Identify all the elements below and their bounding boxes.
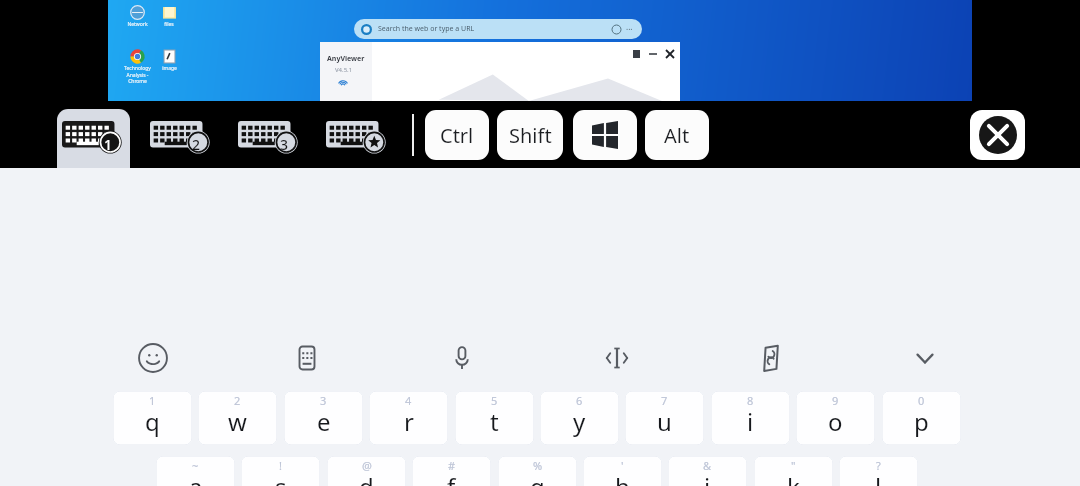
button[interactable]: Ctrl	[425, 110, 489, 160]
button[interactable]: ?	[839, 456, 918, 486]
button[interactable]: Alt	[645, 110, 709, 160]
staticText: "	[791, 458, 796, 473]
staticText: Technology Analysis - Chrome	[124, 65, 151, 84]
staticText: a	[189, 470, 203, 486]
staticText: ?	[876, 458, 881, 473]
staticText: Shift	[509, 122, 552, 149]
staticText: s	[275, 470, 287, 486]
staticText: V4.5.1	[335, 66, 353, 74]
button[interactable]: Keyboard layout 1	[62, 116, 126, 154]
staticText: 8	[747, 393, 754, 408]
button[interactable]: Close toolbar	[970, 110, 1025, 160]
staticText: e	[317, 405, 331, 438]
button[interactable]: &	[668, 456, 747, 486]
staticText: o	[828, 405, 843, 438]
button[interactable]: !	[241, 456, 320, 486]
staticText: 4	[405, 393, 412, 408]
button[interactable]: 6	[540, 391, 619, 445]
button[interactable]: ~	[156, 456, 235, 486]
staticText: 3	[280, 135, 289, 154]
staticText: Search the web or type a URL	[378, 24, 475, 34]
button[interactable]: 5	[455, 391, 534, 445]
button[interactable]: @	[327, 456, 406, 486]
button[interactable]: 8	[711, 391, 790, 445]
button[interactable]: Emoji	[126, 333, 180, 383]
button[interactable]: Keyboard layout 2	[150, 116, 214, 154]
staticText: image	[162, 65, 177, 72]
staticText: d	[359, 470, 374, 486]
staticText: &	[703, 458, 712, 473]
staticText: k	[787, 470, 800, 486]
button[interactable]: 1	[113, 391, 192, 445]
staticText: 2	[234, 393, 241, 408]
staticText: 5	[491, 393, 498, 408]
staticText: 1	[104, 135, 113, 154]
staticText: ...	[626, 21, 633, 32]
button[interactable]: 9	[796, 391, 875, 445]
button[interactable]: Clipboard	[280, 333, 334, 383]
button[interactable]: "	[754, 456, 833, 486]
staticText: ~	[192, 458, 199, 473]
staticText: t	[490, 405, 499, 438]
button[interactable]: Shift	[497, 110, 563, 160]
staticText: Network	[127, 21, 148, 28]
staticText: 9	[832, 393, 839, 408]
staticText: j	[704, 470, 711, 486]
button[interactable]: 0	[882, 391, 961, 445]
staticText: files	[164, 21, 174, 28]
staticText: 0	[918, 393, 925, 408]
staticText: r	[404, 405, 414, 438]
staticText: %	[533, 458, 543, 473]
staticText: p	[914, 405, 929, 438]
button[interactable]: Keyboard layout 3	[238, 116, 302, 154]
staticText: 7	[661, 393, 668, 408]
staticText: 1	[149, 393, 156, 408]
button[interactable]: Keyboard layout 0	[326, 116, 390, 154]
staticText: AnyViewer	[327, 54, 365, 64]
staticText: Ctrl	[440, 122, 474, 149]
button[interactable]: #	[412, 456, 491, 486]
staticText: g	[530, 470, 545, 486]
button[interactable]: Voice input	[435, 333, 489, 383]
staticText: #	[448, 458, 456, 473]
button[interactable]	[57, 109, 130, 168]
button[interactable]: Hide keyboard	[898, 333, 952, 383]
button[interactable]: Windows key	[573, 110, 637, 160]
button[interactable]: '	[583, 456, 662, 486]
staticText: u	[657, 405, 672, 438]
staticText: @	[362, 458, 372, 473]
button[interactable]: 4	[369, 391, 448, 445]
staticText: '	[621, 458, 624, 473]
staticText: w	[228, 405, 247, 438]
staticText: !	[279, 458, 282, 473]
staticText: 3	[320, 393, 327, 408]
button[interactable]: 7	[625, 391, 704, 445]
button[interactable]: Move cursor	[590, 333, 644, 383]
button[interactable]: Sogou	[744, 333, 798, 383]
staticText: i	[747, 405, 754, 438]
button[interactable]: 3	[284, 391, 363, 445]
button[interactable]: 2	[198, 391, 277, 445]
staticText: f	[447, 470, 456, 486]
staticText: q	[145, 405, 160, 438]
staticText: l	[875, 470, 882, 486]
staticText: Alt	[664, 122, 690, 149]
staticText: 6	[576, 393, 583, 408]
staticText: h	[615, 470, 630, 486]
button[interactable]: %	[498, 456, 577, 486]
staticText: y	[573, 405, 586, 438]
staticText: 2	[192, 135, 201, 154]
